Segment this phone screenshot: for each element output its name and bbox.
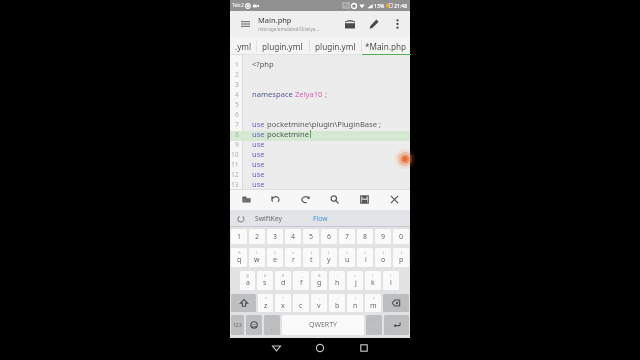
staticText: b [335, 301, 340, 311]
button[interactable]: Save [354, 189, 374, 210]
button[interactable]: 8 [357, 229, 373, 244]
staticText: = [292, 250, 295, 255]
button[interactable]: .yml [230, 37, 256, 55]
button[interactable]: Undo [265, 189, 285, 210]
button[interactable]: Shift [231, 294, 256, 312]
button[interactable]: } [393, 248, 409, 267]
button[interactable]: 5 [303, 229, 319, 244]
button[interactable]: Open folder [236, 189, 256, 210]
button[interactable]: plugin.yml [309, 37, 362, 55]
button[interactable]: 1 [231, 229, 247, 244]
button[interactable]: 6 [321, 229, 337, 244]
button[interactable]: QWERTY [282, 315, 364, 335]
button[interactable]: $ [275, 271, 291, 290]
button[interactable]: Open file [341, 11, 358, 37]
button[interactable]: 3 [267, 229, 283, 244]
staticText: 123 [233, 322, 242, 329]
button[interactable]: Search [324, 189, 344, 210]
staticText: " [282, 296, 284, 301]
staticText: a [246, 278, 250, 288]
staticText: [ [311, 250, 313, 255]
button[interactable]: - [329, 271, 345, 290]
staticText: z [264, 301, 268, 311]
button[interactable]: 9 [375, 229, 391, 244]
button[interactable]: 0 [393, 229, 409, 244]
staticText: @ [246, 273, 250, 278]
button[interactable]: [ [303, 248, 319, 267]
staticText: 11 [231, 160, 239, 169]
button[interactable]: Home [310, 338, 330, 358]
staticText: <?php [252, 59, 274, 69]
staticText: pocketmine\plugin\PluginBase ; [267, 119, 382, 129]
button[interactable]: More options [390, 11, 405, 37]
button[interactable]: ? [365, 294, 381, 312]
staticText: Zelya10 [295, 89, 325, 99]
staticText: ! [271, 318, 273, 323]
staticText: & [318, 273, 321, 278]
staticText: 10 [231, 150, 239, 159]
button[interactable]: { [375, 248, 391, 267]
button[interactable]: 4 [285, 229, 301, 244]
button[interactable]: ] [321, 248, 337, 267]
staticText: e [273, 255, 277, 265]
button[interactable]: @ [240, 271, 255, 290]
button[interactable]: & [311, 271, 327, 290]
staticText: 13 [231, 180, 239, 189]
button[interactable]: : [311, 294, 327, 312]
staticText: o [381, 255, 386, 265]
staticText: ! [355, 296, 356, 301]
staticText: plugin.yml [315, 41, 356, 52]
button[interactable]: ( [365, 271, 381, 290]
button[interactable]: Recent apps [354, 338, 374, 358]
staticText: 0 [399, 232, 404, 242]
button[interactable]: _ [293, 271, 309, 290]
staticText: ? [373, 296, 375, 301]
button[interactable]: < [339, 248, 355, 267]
staticText: plugin.yml [262, 41, 303, 52]
staticText: q [237, 255, 242, 265]
staticText: Main.php [258, 15, 292, 25]
button[interactable]: Close [384, 189, 404, 210]
button[interactable]: Selection handle [395, 149, 415, 169]
staticText: 9 [235, 140, 239, 149]
button[interactable]: Redo [295, 189, 315, 210]
button[interactable]: Enter [384, 315, 409, 335]
button[interactable]: * [258, 294, 273, 312]
staticText: _ [301, 273, 303, 278]
staticText: 6 [327, 232, 332, 242]
button[interactable]: ' [293, 294, 309, 312]
staticText: * [265, 296, 267, 301]
button[interactable]: *Main.php [361, 37, 410, 55]
button[interactable]: = [285, 248, 301, 267]
staticText: h [335, 278, 340, 288]
button[interactable]: " [275, 294, 291, 312]
staticText: ' [301, 296, 302, 301]
button[interactable]: 2 [249, 229, 265, 244]
button[interactable]: # [257, 271, 273, 290]
staticText: v [317, 301, 321, 311]
button[interactable]: Backspace [383, 294, 409, 312]
button[interactable]: Emoji [246, 315, 262, 335]
button[interactable]: Edit [365, 11, 382, 37]
button[interactable]: \ [249, 248, 265, 267]
button[interactable]: > [357, 248, 373, 267]
staticText: 8 [363, 232, 368, 242]
staticText: + [354, 273, 357, 278]
button[interactable]: % [231, 248, 247, 267]
button[interactable]: Navigation menu [236, 11, 254, 37]
staticText: { [383, 250, 385, 255]
staticText: 7 [235, 120, 239, 129]
button[interactable]: | [267, 248, 283, 267]
button[interactable]: Back [266, 338, 286, 358]
button[interactable]: Keyboard settings [234, 210, 248, 227]
button[interactable]: ! [347, 294, 363, 312]
button[interactable]: + [347, 271, 363, 290]
button[interactable]: 7 [339, 229, 355, 244]
button[interactable]: ; [329, 294, 345, 312]
button[interactable]: 123 [231, 315, 244, 335]
button[interactable]: plugin.yml [256, 37, 309, 55]
staticText: ; [337, 296, 338, 301]
button[interactable]: ) [383, 271, 399, 290]
